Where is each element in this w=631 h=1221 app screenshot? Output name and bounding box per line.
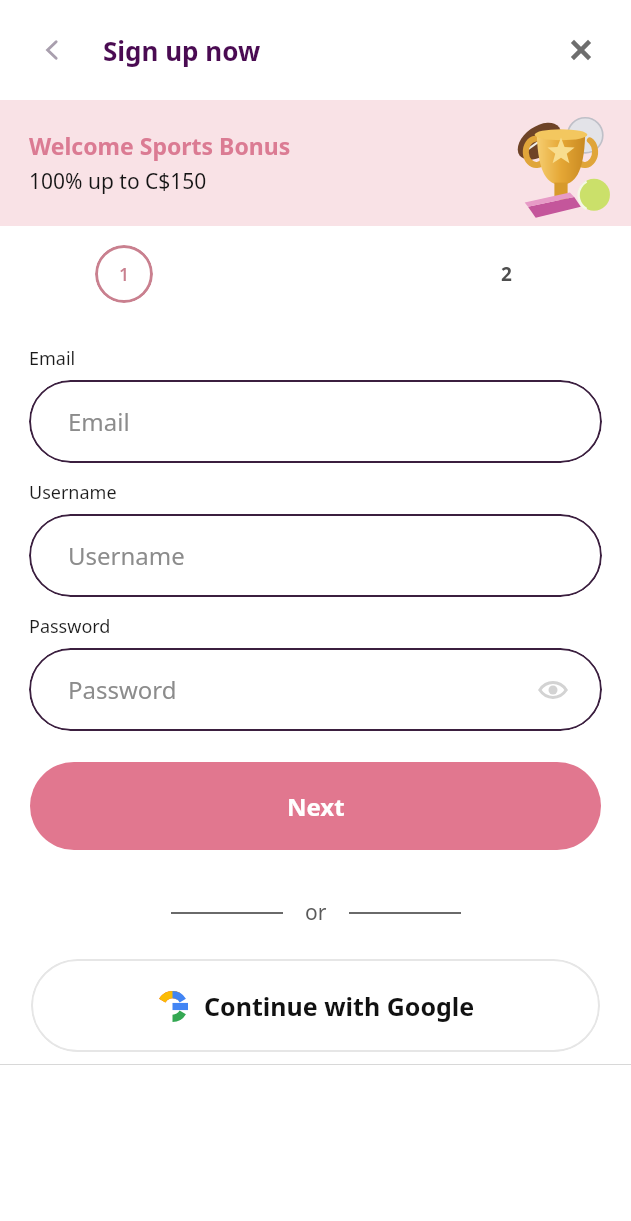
button[interactable]: Back xyxy=(24,22,80,78)
staticText: Welcome Sports Bonus xyxy=(29,130,291,161)
staticText: Sign up now xyxy=(103,33,261,68)
staticText: Email xyxy=(29,346,76,371)
button[interactable]: Next xyxy=(30,762,601,850)
staticText: 1 xyxy=(119,262,130,287)
button[interactable]: 1 xyxy=(95,245,153,303)
staticText: Email xyxy=(68,405,130,438)
staticText: Continue with Google xyxy=(204,989,475,1023)
staticText: 100% up to C$150 xyxy=(29,167,207,196)
button[interactable]: Welcome Sports Bonus xyxy=(0,100,631,226)
button[interactable]: Email xyxy=(29,380,602,463)
staticText: or xyxy=(305,898,327,927)
button[interactable]: Password xyxy=(29,648,602,731)
staticText: 2 xyxy=(501,261,512,287)
staticText: Username xyxy=(68,539,185,572)
button[interactable]: Show password xyxy=(529,666,577,714)
button[interactable]: Close xyxy=(553,22,609,78)
staticText: Password xyxy=(68,673,177,706)
button[interactable]: 2 xyxy=(477,245,535,303)
button[interactable]: Username xyxy=(29,514,602,597)
staticText: Next xyxy=(287,790,345,823)
button[interactable]: Continue with Google xyxy=(31,959,600,1052)
staticText: Password xyxy=(29,614,111,639)
staticText: Username xyxy=(29,480,117,505)
